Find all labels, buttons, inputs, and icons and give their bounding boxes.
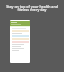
button[interactable] [10,20,30,63]
staticText: Stay on top of your health and fitness e… [3,4,61,12]
